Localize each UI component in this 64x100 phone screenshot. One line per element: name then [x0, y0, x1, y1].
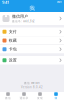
staticText: 设置 [9, 58, 17, 63]
staticText: Version 8.0.42 [21, 85, 43, 89]
button[interactable]: 卡包 [0, 45, 64, 53]
staticText: 我 [54, 96, 57, 100]
button[interactable]: 我 [48, 92, 64, 100]
staticText: 微信 Weixin [24, 81, 40, 85]
staticText: 卡包 [9, 47, 17, 52]
staticText: 支付 [9, 29, 17, 34]
button[interactable]: 设置 [0, 56, 64, 64]
staticText: 微信 [5, 96, 11, 100]
staticText: 微信用户 [12, 14, 28, 19]
button[interactable]: 微信 [0, 92, 16, 100]
button[interactable]: 收藏 [0, 36, 64, 45]
button[interactable]: 发现 [32, 92, 48, 100]
button[interactable]: 支付 [0, 27, 64, 36]
staticText: WiFi [57, 0, 62, 4]
staticText: 通讯录 [19, 96, 28, 100]
button[interactable]: 通讯录 [16, 92, 32, 100]
staticText: 我 [29, 5, 34, 12]
staticText: 发现 [37, 96, 43, 100]
button[interactable]: 微信用户 [0, 12, 64, 25]
staticText: 9:41 [2, 0, 9, 5]
staticText: 收藏 [9, 38, 17, 43]
staticText: 微信号: wxid_8a2 [12, 19, 35, 23]
